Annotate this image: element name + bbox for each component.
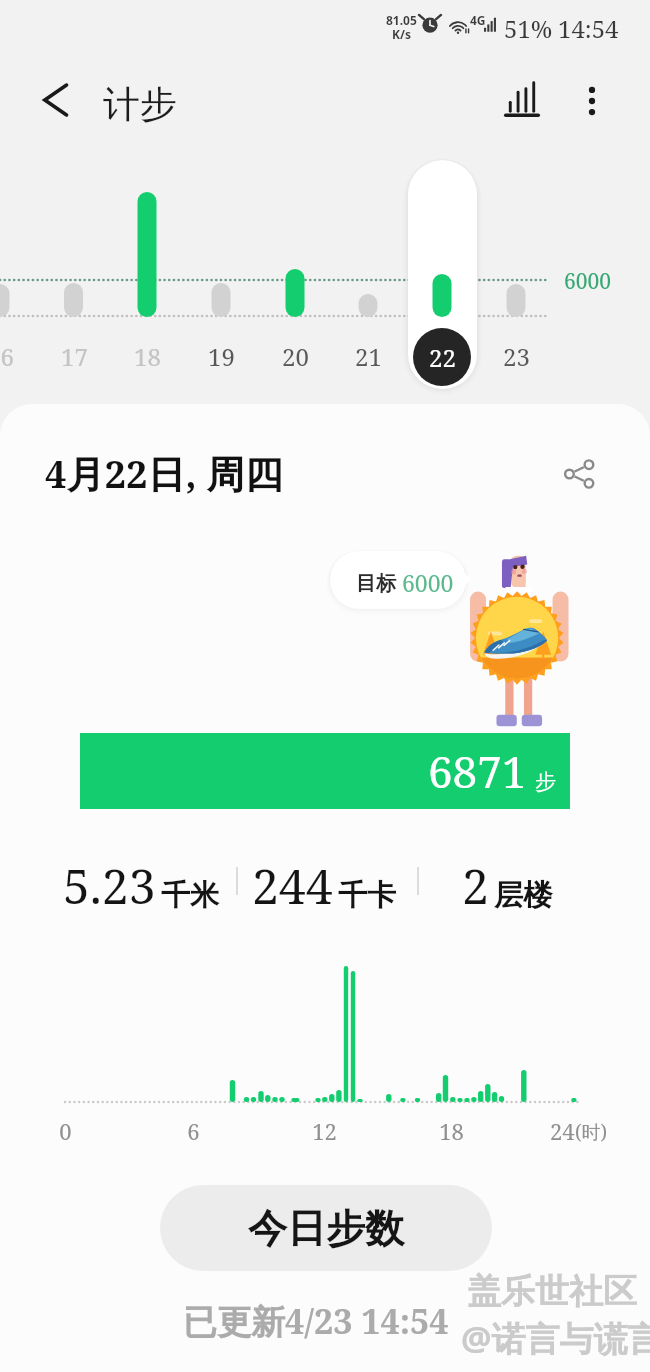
staticText: 81.05 — [386, 12, 417, 28]
button[interactable]: 21 — [338, 336, 398, 376]
staticText: 21 — [355, 340, 382, 373]
staticText: 已更新4/23 14:54 — [183, 1298, 449, 1344]
staticText: 18 — [439, 1116, 464, 1146]
staticText: 22 — [429, 341, 456, 374]
staticText: 51% — [504, 12, 553, 45]
staticText: 4月22日, 周四 — [45, 447, 283, 499]
staticText: 目标 — [356, 571, 396, 596]
button[interactable]: 22 — [413, 328, 471, 386]
staticText: 16 — [0, 340, 14, 373]
button[interactable]: 19 — [191, 336, 251, 376]
button[interactable]: Share — [552, 446, 608, 502]
staticText: 6871 — [428, 741, 527, 801]
staticText: 23 — [503, 340, 530, 373]
staticText: 19 — [208, 340, 235, 373]
staticText: 千米 — [161, 877, 219, 914]
staticText: 12 — [312, 1116, 337, 1146]
button[interactable]: 16 — [0, 336, 30, 376]
staticText: @诺言与谎言 — [461, 1315, 650, 1361]
staticText: 6000 — [564, 267, 611, 296]
staticText: 2 — [462, 853, 489, 918]
staticText: 244 — [252, 853, 333, 918]
staticText: 今日步数 — [248, 1204, 404, 1253]
staticText: 14:54 — [558, 12, 619, 45]
button[interactable]: 今日步数 — [160, 1185, 492, 1271]
staticText: 层楼 — [494, 877, 552, 914]
staticText: 6000 — [402, 567, 454, 598]
button[interactable]: More options — [562, 71, 622, 131]
staticText: 17 — [61, 340, 88, 373]
staticText: 24 — [550, 1116, 575, 1146]
button[interactable]: 18 — [117, 336, 177, 376]
staticText: 盖乐世社区 — [467, 1270, 637, 1313]
button[interactable]: 20 — [265, 336, 325, 376]
staticText: K/s — [392, 26, 411, 42]
button[interactable]: Statistics — [492, 71, 552, 131]
button[interactable]: 6871 — [80, 733, 570, 809]
staticText: 18 — [134, 340, 161, 373]
staticText: 千卡 — [338, 877, 396, 914]
button[interactable]: Selected day — [408, 160, 477, 389]
button[interactable]: 17 — [44, 336, 104, 376]
button[interactable]: 23 — [486, 336, 546, 376]
staticText: 5.23 — [63, 853, 156, 918]
staticText: 6 — [187, 1116, 200, 1146]
staticText: 0 — [59, 1116, 72, 1146]
staticText: 4G — [470, 12, 486, 28]
staticText: (时) — [575, 1119, 608, 1145]
staticText: 20 — [282, 340, 309, 373]
button[interactable]: Back — [27, 72, 83, 128]
staticText: 计步 — [103, 81, 177, 128]
staticText: 步 — [535, 769, 556, 795]
